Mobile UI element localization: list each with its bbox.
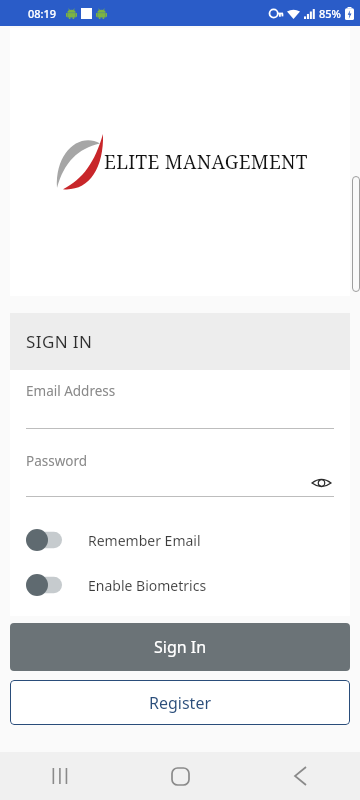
staticText: Register <box>149 692 212 714</box>
button[interactable]: Back <box>240 752 360 800</box>
button[interactable]: Enable Biometrics <box>26 574 334 596</box>
staticText: ELITE MANAGEMENT <box>104 149 308 175</box>
staticText: Remember Email <box>88 531 201 550</box>
staticText: SIGN IN <box>26 330 93 353</box>
button[interactable]: Show password <box>308 470 334 496</box>
button[interactable]: Sign In <box>10 623 350 671</box>
staticText: 85% <box>319 6 341 21</box>
button[interactable]: Recent apps <box>0 752 120 800</box>
button[interactable]: Home <box>120 752 240 800</box>
staticText: 08:19 <box>28 6 57 21</box>
button[interactable]: Remember Email <box>26 529 334 551</box>
button[interactable]: Register <box>10 680 350 725</box>
staticText: Sign In <box>154 636 207 658</box>
staticText: Enable Biometrics <box>88 576 207 595</box>
staticText: Email Address <box>26 382 116 400</box>
staticText: Password <box>26 452 88 470</box>
